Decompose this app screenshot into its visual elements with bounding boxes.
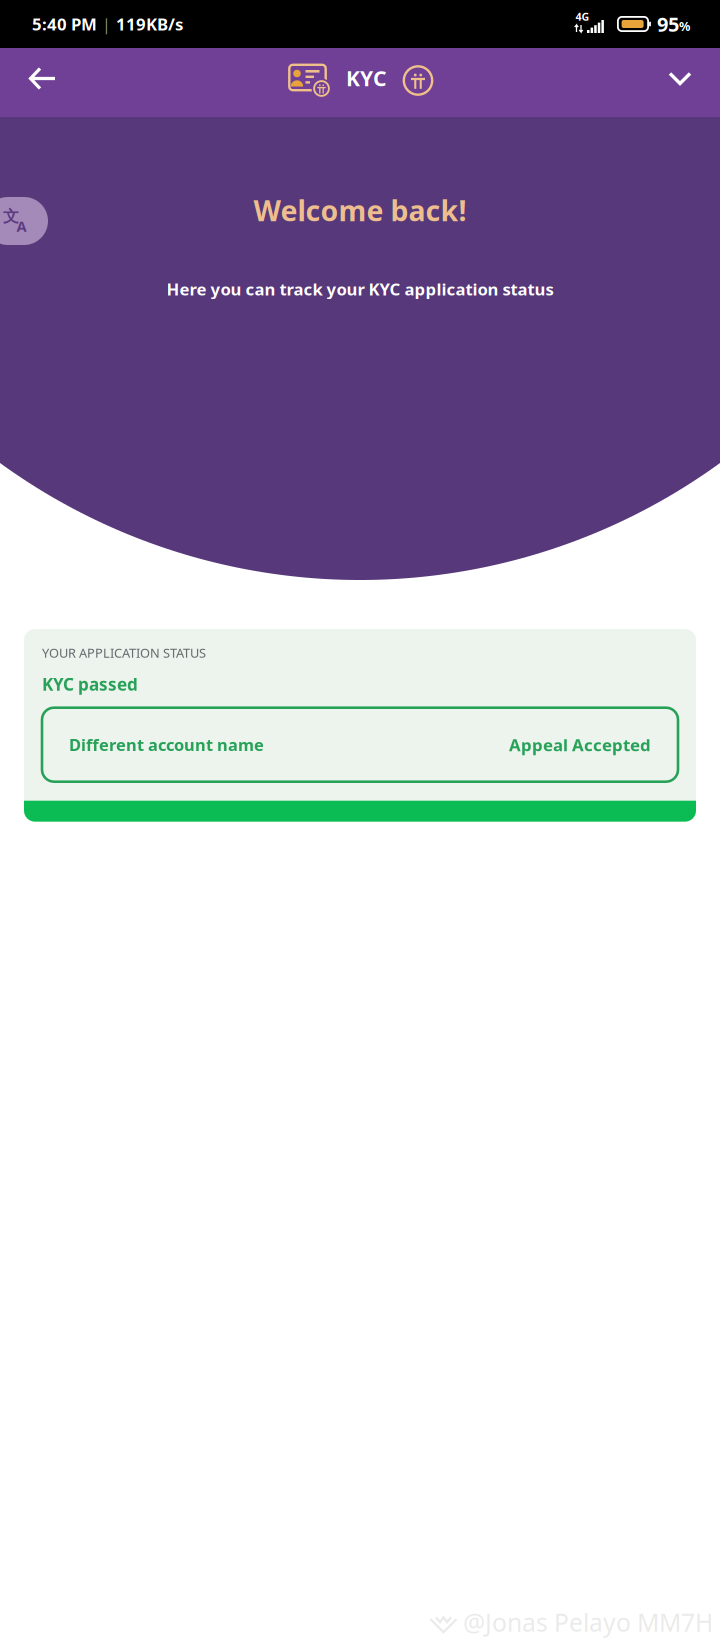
button[interactable]: Show more bbox=[652, 49, 708, 107]
button[interactable]: Translate bbox=[0, 197, 48, 245]
button[interactable]: Different account name bbox=[42, 708, 678, 782]
staticText: Here you can track your KYC application … bbox=[166, 278, 553, 300]
staticText: Different account name bbox=[69, 733, 264, 756]
staticText: YOUR APPLICATION STATUS bbox=[42, 644, 206, 661]
staticText: Appeal Accepted bbox=[509, 733, 651, 756]
staticText: | bbox=[102, 13, 111, 35]
staticText: Welcome back! bbox=[253, 191, 466, 230]
staticText: 119KB/s bbox=[116, 13, 183, 35]
staticText: 5:40 PM bbox=[32, 13, 97, 35]
staticText: 4G bbox=[575, 9, 589, 24]
staticText: A bbox=[16, 216, 26, 236]
staticText: 文 bbox=[3, 206, 19, 227]
staticText: @Jonas Pelayo MM7H bbox=[463, 1605, 713, 1639]
button[interactable]: Back bbox=[12, 48, 73, 109]
staticText: KYC passed bbox=[42, 672, 138, 696]
staticText: % bbox=[679, 17, 690, 35]
staticText: KYC bbox=[346, 64, 387, 92]
staticText: 95 bbox=[657, 10, 679, 38]
